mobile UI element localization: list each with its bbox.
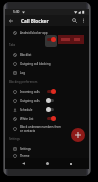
staticText: Block unknown numbers from or contacts [20, 125, 62, 133]
staticText: Schedule [20, 108, 33, 112]
button[interactable]: Outgoing call blocking [5, 59, 89, 68]
staticText: 5:30 [13, 10, 20, 14]
staticText: White List [20, 117, 34, 121]
button[interactable]: Blocklist [5, 50, 89, 59]
button[interactable]: Incoming calls [5, 87, 89, 96]
button[interactable]: Home [42, 158, 53, 169]
staticText: Log [20, 71, 26, 75]
button[interactable]: Schedule [5, 105, 89, 114]
button[interactable]: Android blocker app [5, 26, 89, 40]
button[interactable]: Back [7, 17, 15, 25]
button[interactable]: Recents [65, 158, 76, 169]
staticText: Tabs [9, 43, 16, 47]
button[interactable]: Toggle [46, 89, 55, 94]
staticText: Settings [20, 147, 31, 151]
button[interactable]: Block unknown numbers from or contacts [5, 123, 89, 134]
button[interactable]: Toggle [46, 107, 55, 112]
button[interactable]: Search [70, 16, 79, 25]
staticText: Blocking preferences [9, 80, 38, 84]
button[interactable]: Back [18, 158, 29, 169]
button[interactable]: Toggle blocker [45, 35, 57, 47]
staticText: Settings [9, 137, 20, 141]
button[interactable]: Toggle [46, 98, 55, 103]
staticText: Blocklist [20, 53, 32, 57]
staticText: Incoming calls [20, 90, 40, 94]
button[interactable]: Settings [5, 144, 89, 153]
staticText: Android blocker app [20, 31, 48, 35]
button[interactable]: Toggle [46, 116, 55, 121]
button[interactable]: More options [79, 16, 88, 25]
staticText: Outgoing calls [20, 99, 40, 103]
button[interactable]: Add [71, 128, 85, 142]
button[interactable]: Theme [5, 153, 89, 158]
staticText: Call Blocker [21, 18, 49, 24]
button[interactable]: Outgoing calls [5, 96, 89, 105]
button[interactable]: White List [5, 114, 89, 123]
staticText: Theme [20, 154, 30, 158]
button[interactable]: Log [5, 68, 89, 77]
staticText: Outgoing call blocking [20, 62, 51, 66]
